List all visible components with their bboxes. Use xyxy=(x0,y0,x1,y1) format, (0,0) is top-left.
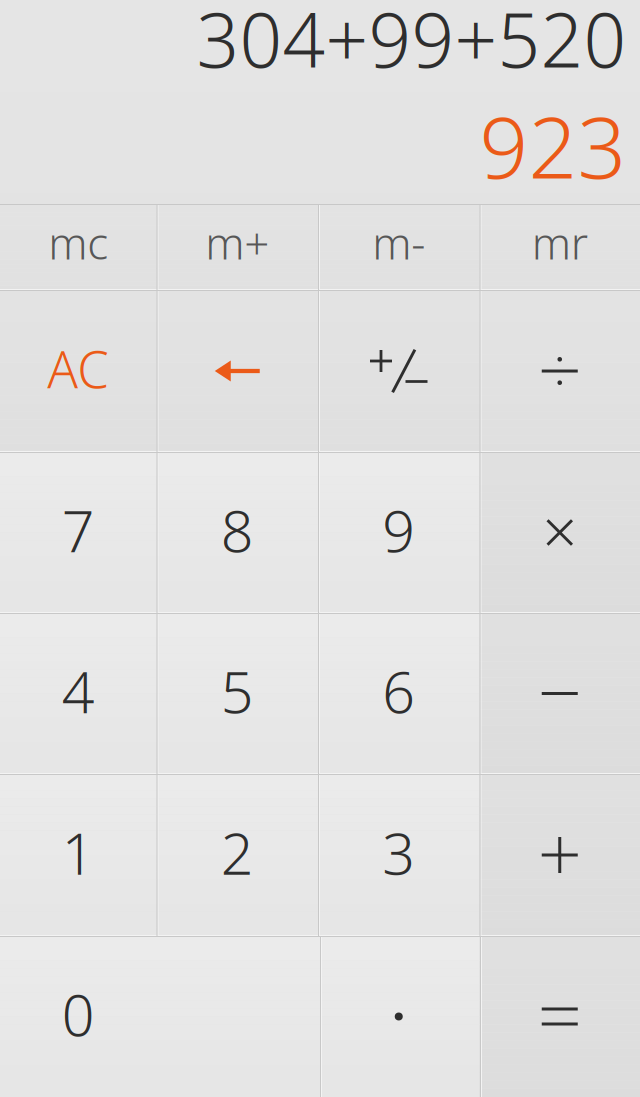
staticText: 0 xyxy=(62,976,95,1052)
staticText: 923 xyxy=(479,89,626,202)
button[interactable]: Divide xyxy=(479,290,640,452)
button[interactable]: 7 xyxy=(0,452,156,613)
button[interactable]: mr xyxy=(479,204,640,290)
staticText: 2 xyxy=(221,814,254,890)
staticText: 304+99+520 xyxy=(196,0,626,88)
button[interactable]: 6 xyxy=(318,613,479,774)
button[interactable]: Decimal point xyxy=(318,936,479,1097)
button[interactable]: m- xyxy=(318,204,479,290)
button[interactable]: 8 xyxy=(156,452,318,613)
button[interactable]: m+ xyxy=(156,204,318,290)
staticText: m- xyxy=(372,213,425,272)
staticText: 7 xyxy=(62,492,95,568)
staticText: mr xyxy=(532,213,588,272)
staticText: 6 xyxy=(382,653,415,729)
staticText: 1 xyxy=(62,814,95,890)
button[interactable]: 2 xyxy=(156,774,318,936)
button[interactable]: AC xyxy=(0,290,156,452)
button[interactable]: Add xyxy=(479,774,640,936)
button[interactable]: Subtract xyxy=(479,613,640,774)
button[interactable]: Multiply xyxy=(479,452,640,613)
staticText: 4 xyxy=(62,653,95,729)
button[interactable]: Plus or minus xyxy=(318,290,479,452)
staticText: m+ xyxy=(205,213,269,272)
button[interactable]: 4 xyxy=(0,613,156,774)
button[interactable]: Backspace xyxy=(156,290,318,452)
staticText: 8 xyxy=(221,492,254,568)
staticText: 5 xyxy=(221,653,254,729)
staticText: AC xyxy=(47,335,109,402)
button[interactable]: 1 xyxy=(0,774,156,936)
button[interactable]: mc xyxy=(0,204,156,290)
button[interactable]: Equals xyxy=(479,936,640,1097)
button[interactable]: 0 xyxy=(0,936,318,1097)
staticText: 3 xyxy=(382,814,415,890)
button[interactable]: 9 xyxy=(318,452,479,613)
staticText: mc xyxy=(48,213,108,272)
button[interactable]: 3 xyxy=(318,774,479,936)
staticText: 9 xyxy=(382,492,415,568)
button[interactable]: 5 xyxy=(156,613,318,774)
